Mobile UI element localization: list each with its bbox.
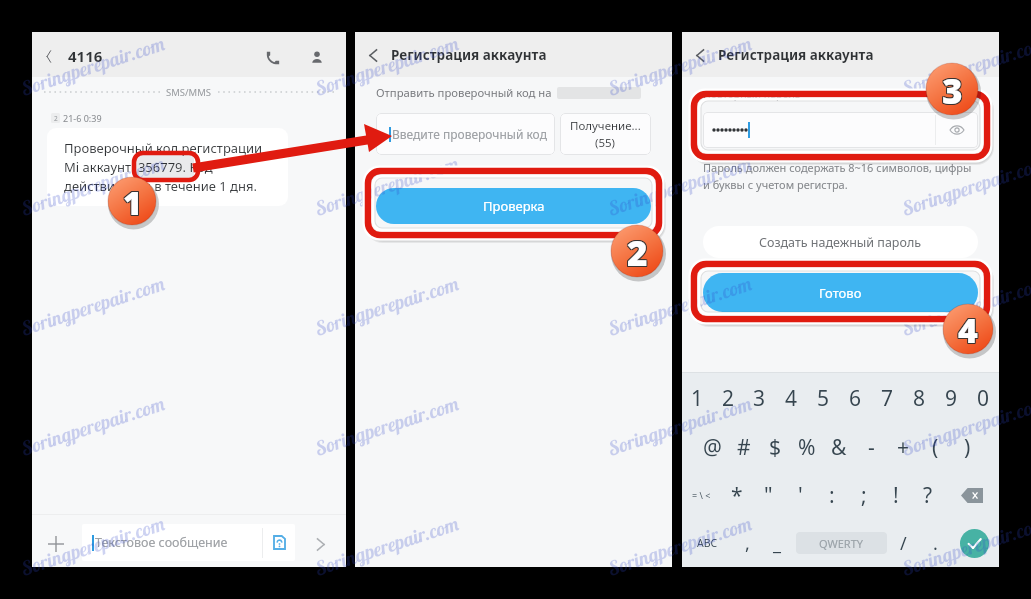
button[interactable]: 4 [775, 378, 807, 418]
staticText: 9 [945, 384, 958, 413]
button[interactable]: % [791, 427, 823, 467]
button[interactable]: ABC [687, 523, 727, 563]
staticText: 2 [628, 227, 649, 275]
button[interactable]: QWERTY [796, 532, 887, 554]
button[interactable]: Send [304, 528, 336, 560]
button[interactable]: @ [697, 427, 728, 467]
staticText: 2 [627, 227, 648, 275]
button[interactable]: ) [951, 427, 983, 467]
staticText: 6 [849, 384, 862, 413]
button[interactable]: Call [257, 42, 289, 74]
button[interactable]: Готово [703, 273, 978, 312]
button[interactable]: 6 [839, 378, 871, 418]
button[interactable]: $ [759, 427, 791, 467]
staticText: 1 [124, 179, 143, 223]
staticText: Soringperepair.com [312, 510, 462, 580]
button[interactable]: ? [912, 475, 944, 515]
staticText: Soringperepair.com [605, 390, 755, 460]
button[interactable]: Получение... [560, 113, 651, 155]
staticText: 1 [122, 181, 141, 225]
staticText: Отправить проверочный код на [376, 85, 552, 100]
button[interactable]: , [727, 523, 767, 563]
button[interactable]: 0 [967, 378, 999, 418]
button[interactable]: " [752, 475, 784, 515]
staticText: = \ < [692, 489, 711, 501]
staticText: @ [703, 433, 722, 462]
button[interactable]: ' [784, 475, 816, 515]
staticText: Готово [819, 284, 862, 302]
staticText: (55) [595, 135, 616, 151]
staticText: Soringperepair.com [312, 390, 462, 460]
staticText: 4 [958, 308, 978, 354]
button[interactable]: Message templates [263, 524, 295, 561]
staticText: Проверка [483, 197, 545, 215]
button[interactable]: ; [848, 475, 880, 515]
staticText: Soringperepair.com [312, 30, 462, 100]
staticText: & [831, 433, 847, 462]
staticText: 0 [977, 384, 990, 413]
button[interactable]: Текстовое сообщение [82, 524, 295, 561]
staticText: Soringperepair.com [605, 150, 755, 220]
staticText: Введите проверочный код [392, 126, 547, 142]
staticText: Пароль должен содержать 8~16 символов, ц… [703, 160, 972, 175]
staticText: 3 [941, 67, 962, 115]
staticText: 4 [958, 307, 978, 353]
staticText: Регистрация аккаунта [718, 46, 874, 64]
button[interactable]: Введите проверочный код [376, 113, 555, 155]
staticText: 3 [941, 65, 962, 113]
staticText: 2 [722, 384, 735, 413]
staticText: Soringperepair.com [899, 270, 1031, 340]
staticText: 21-6 0:39 [63, 112, 102, 124]
staticText: $ [769, 433, 782, 462]
button[interactable]: ! [880, 475, 912, 515]
staticText: 2 [627, 229, 648, 277]
staticText: Soringperepair.com [605, 270, 755, 340]
button[interactable]: / [883, 523, 923, 563]
staticText: QWERTY [819, 536, 864, 551]
button[interactable]: 2 [713, 378, 744, 418]
button[interactable]: - [855, 427, 887, 467]
button[interactable]: Проверка [376, 188, 651, 224]
button[interactable]: ( [919, 427, 951, 467]
button[interactable]: Enter [954, 523, 994, 563]
button[interactable]: Back [33, 40, 65, 72]
button[interactable]: & [823, 427, 855, 467]
button[interactable]: _ [757, 523, 797, 563]
staticText: Soringperepair.com [18, 150, 168, 220]
button[interactable]: # [728, 427, 759, 467]
staticText: 4 [957, 307, 977, 353]
staticText: + [897, 433, 910, 462]
button[interactable]: . [915, 523, 955, 563]
button[interactable]: Back [682, 37, 718, 73]
button[interactable]: Backspace [944, 475, 999, 515]
staticText: 1 [122, 180, 141, 224]
staticText: ! [893, 481, 899, 510]
button[interactable]: Back [355, 37, 391, 73]
staticText: 4 [959, 307, 979, 353]
staticText: 4 [957, 308, 977, 354]
button[interactable]: * [721, 475, 752, 515]
button[interactable]: 8 [903, 378, 935, 418]
button[interactable]: Contact details [301, 42, 333, 74]
button[interactable]: 9 [935, 378, 967, 418]
staticText: % [798, 433, 816, 462]
button[interactable]: Show password [936, 112, 978, 148]
staticText: Создать надежный пароль [759, 234, 922, 251]
button[interactable]: = \ < [682, 475, 721, 515]
button[interactable]: 7 [871, 378, 903, 418]
button[interactable]: 5 [807, 378, 839, 418]
button[interactable]: Show password [703, 112, 978, 148]
staticText: 5 [817, 384, 830, 413]
staticText: действителен в течение 1 дня. [64, 177, 257, 195]
button[interactable]: 3 [744, 378, 775, 418]
button[interactable]: Создать надежный пароль [703, 226, 978, 258]
staticText: 2 [628, 229, 649, 277]
button[interactable]: Проверочный код регистрации [47, 128, 288, 206]
staticText: " [764, 481, 773, 510]
button[interactable]: 1 [682, 378, 713, 418]
staticText: Soringperepair.com [18, 30, 168, 100]
button[interactable]: : [816, 475, 848, 515]
button[interactable]: + [887, 427, 919, 467]
button[interactable]: Add attachment [40, 528, 72, 560]
staticText: ; [861, 481, 867, 510]
